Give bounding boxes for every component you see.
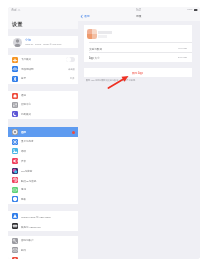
button[interactable]: 通用: [8, 127, 78, 137]
staticText: 触控ID与密码: [21, 179, 37, 182]
button[interactable]: 密码与帐户: [8, 236, 78, 245]
staticText: 声音: [21, 160, 26, 163]
button[interactable]: 蓝牙: [8, 74, 78, 83]
button[interactable]: 隐私: [8, 194, 78, 204]
staticText: 勿扰模式: [21, 113, 31, 116]
staticText: 9:41: [136, 8, 142, 12]
button[interactable]: 飞行模式: [8, 55, 78, 64]
staticText: 删除 App: [132, 71, 144, 75]
button[interactable]: 控制中心: [8, 100, 78, 109]
staticText: 通用: [84, 14, 90, 18]
button[interactable]: 触控ID与密码: [8, 175, 78, 185]
button[interactable]: 删除 App: [84, 68, 192, 77]
button[interactable]: 小明: [8, 36, 78, 48]
staticText: 54.2 MB: [178, 56, 187, 59]
button[interactable]: 钱包与 Apple Pay: [8, 221, 78, 231]
staticText: 打开: [70, 77, 75, 80]
button[interactable]: 电池: [8, 185, 78, 194]
staticText: 小明: [25, 38, 31, 42]
button[interactable]: 通讯录: [8, 255, 78, 259]
staticText: 删除 App 将同时删除其文稿与数据，此操作不可撤销。: [86, 79, 138, 82]
staticText: 墙纸: [21, 150, 26, 153]
staticText: 无线局域网: [21, 68, 34, 71]
staticText: Siri与搜索: [21, 169, 33, 172]
button[interactable]: 显示与亮度: [8, 137, 78, 146]
staticText: 未连接: [68, 68, 75, 71]
staticText: 用量: [136, 14, 142, 18]
staticText: 密码与帐户: [21, 239, 34, 242]
button[interactable]: 勿扰模式: [8, 109, 78, 119]
staticText: 隐私: [21, 198, 26, 201]
staticText: iPad: [11, 8, 17, 12]
button[interactable]: 声音: [8, 156, 78, 166]
staticText: 钱包与 Apple Pay: [21, 225, 41, 228]
button[interactable]: 墙纸: [8, 146, 78, 156]
button[interactable]: 通知: [8, 91, 78, 100]
staticText: 显示与亮度: [21, 140, 34, 143]
staticText: 设置: [12, 21, 23, 28]
staticText: 蓝牙: [21, 77, 26, 80]
button[interactable]: iTunes Store 与 App Store: [8, 211, 78, 221]
staticText: 电池: [21, 188, 26, 191]
staticText: iTunes Store 与 App Store: [21, 215, 51, 218]
button[interactable]: 无线局域网: [8, 64, 78, 74]
staticText: 邮件: [21, 249, 26, 252]
staticText: 100%: [187, 8, 193, 11]
button[interactable]: 通用: [78, 13, 92, 21]
staticText: 10.3 MB: [178, 47, 187, 50]
staticText: 飞行模式: [21, 58, 31, 61]
staticText: 文稿与数据: [89, 47, 102, 50]
button[interactable]: Siri与搜索: [8, 166, 78, 175]
staticText: 控制中心: [21, 103, 31, 106]
staticText: 通知: [21, 94, 26, 97]
button[interactable]: 邮件: [8, 245, 78, 255]
staticText: Apple ID、iCloud、iTunes 与 App Store: [25, 43, 62, 46]
staticText: App 大小: [89, 56, 100, 60]
staticText: 通用: [21, 131, 26, 134]
